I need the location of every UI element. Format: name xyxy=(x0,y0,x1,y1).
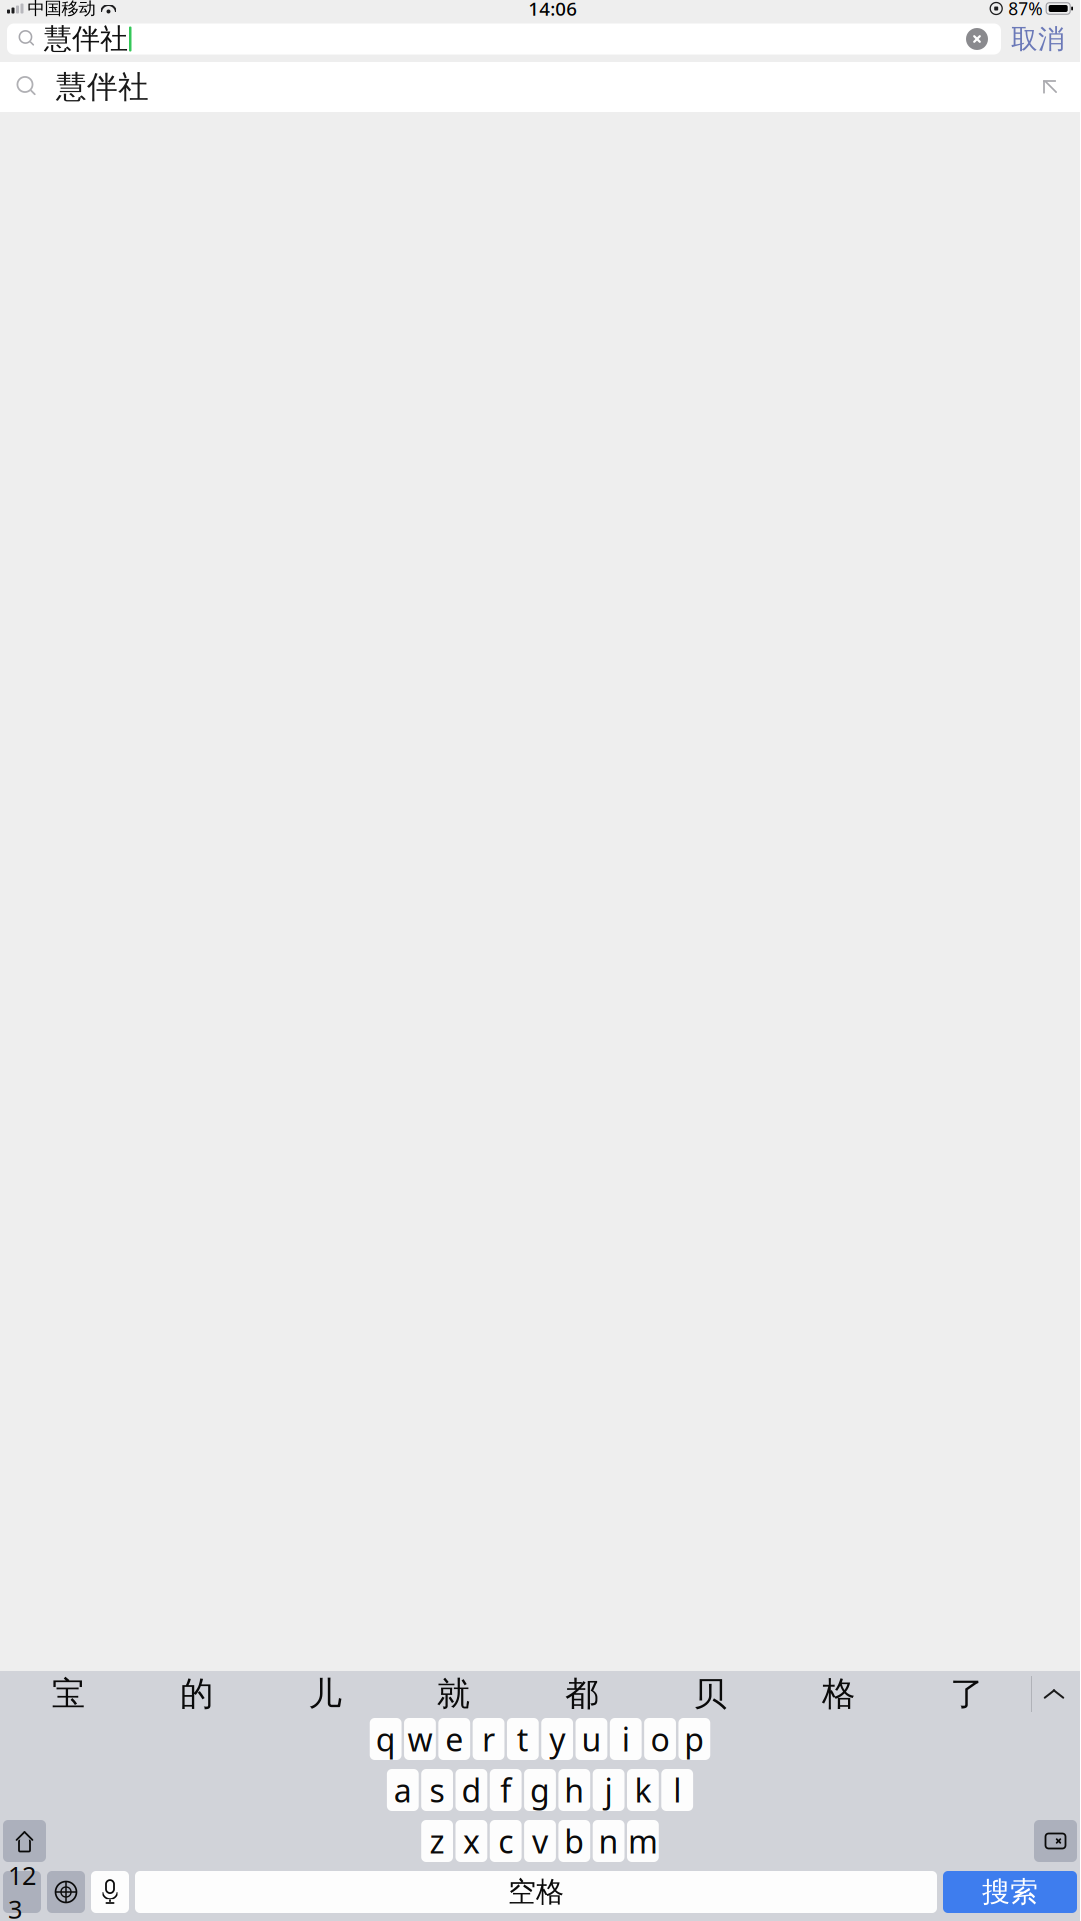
button[interactable]: k xyxy=(627,1769,659,1811)
button[interactable]: m xyxy=(627,1820,659,1862)
staticText: 就 xyxy=(437,1673,470,1714)
button[interactable]: p xyxy=(678,1718,710,1760)
button[interactable]: i xyxy=(610,1718,642,1760)
staticText: k xyxy=(634,1769,651,1811)
staticText: x xyxy=(463,1820,480,1862)
button[interactable]: 贝 xyxy=(646,1671,774,1717)
button[interactable]: f xyxy=(490,1769,522,1811)
button[interactable]: 取消 xyxy=(1001,22,1075,56)
button[interactable]: 慧伴社 xyxy=(0,62,1080,112)
button[interactable]: 的 xyxy=(132,1671,261,1717)
button[interactable]: 空格 xyxy=(135,1871,937,1913)
button[interactable]: o xyxy=(644,1718,676,1760)
staticText: 格 xyxy=(822,1673,855,1714)
button[interactable]: b xyxy=(558,1820,590,1862)
button[interactable]: 儿 xyxy=(261,1671,389,1717)
staticText: 14:06 xyxy=(528,0,577,21)
button[interactable]: r xyxy=(473,1718,504,1760)
staticText: n xyxy=(599,1820,619,1862)
button[interactable]: 宝 xyxy=(4,1671,132,1717)
button[interactable]: j xyxy=(593,1769,624,1811)
staticText: c xyxy=(498,1820,513,1862)
button[interactable]: h xyxy=(558,1769,590,1811)
button[interactable]: y xyxy=(541,1718,573,1760)
button[interactable]: d xyxy=(455,1769,487,1811)
staticText: 搜索 xyxy=(982,1875,1038,1909)
button[interactable]: v xyxy=(524,1820,556,1862)
button[interactable]: Shift xyxy=(3,1820,46,1862)
staticText: h xyxy=(564,1769,584,1811)
staticText: p xyxy=(684,1718,704,1760)
button[interactable]: w xyxy=(404,1718,436,1760)
staticText: 取消 xyxy=(1011,23,1065,55)
button[interactable]: l xyxy=(661,1769,693,1811)
button[interactable]: 了 xyxy=(903,1671,1031,1717)
staticText: j xyxy=(605,1769,613,1811)
staticText: 中国移动 xyxy=(27,0,95,19)
button[interactable]: 格 xyxy=(774,1671,903,1717)
button[interactable]: g xyxy=(524,1769,556,1811)
button[interactable]: Clear text xyxy=(957,19,997,59)
staticText: z xyxy=(430,1820,445,1862)
button[interactable]: 都 xyxy=(517,1671,646,1717)
button[interactable]: u xyxy=(576,1718,607,1760)
staticText: f xyxy=(500,1769,511,1811)
staticText: r xyxy=(482,1718,495,1760)
button[interactable]: a xyxy=(387,1769,419,1811)
button[interactable]: c xyxy=(490,1820,522,1862)
staticText: u xyxy=(581,1718,601,1760)
button[interactable]: 就 xyxy=(389,1671,517,1717)
staticText: s xyxy=(430,1769,445,1811)
staticText: 慧伴社 xyxy=(44,22,128,56)
button[interactable]: q xyxy=(370,1718,402,1760)
staticText: o xyxy=(651,1718,670,1760)
staticText: 贝 xyxy=(694,1673,727,1714)
button[interactable]: x xyxy=(455,1820,487,1862)
staticText: 宝 xyxy=(52,1673,85,1714)
staticText: q xyxy=(376,1718,396,1760)
staticText: 87% xyxy=(1008,0,1042,20)
staticText: 123 xyxy=(8,1858,36,1921)
staticText: a xyxy=(394,1769,412,1811)
staticText: 慧伴社 xyxy=(56,68,149,106)
staticText: 了 xyxy=(950,1673,983,1714)
staticText: v xyxy=(532,1820,548,1862)
button[interactable]: s xyxy=(421,1769,453,1811)
staticText: 空格 xyxy=(508,1875,564,1909)
staticText: t xyxy=(517,1718,529,1760)
staticText: y xyxy=(549,1718,565,1760)
button[interactable]: Dictation xyxy=(91,1871,129,1913)
staticText: 都 xyxy=(565,1673,598,1714)
button[interactable]: 123 xyxy=(3,1871,41,1913)
staticText: l xyxy=(673,1769,681,1811)
staticText: m xyxy=(628,1820,658,1862)
staticText: b xyxy=(564,1820,584,1862)
button[interactable]: 搜索 xyxy=(943,1871,1077,1913)
staticText: g xyxy=(530,1769,550,1811)
button[interactable]: t xyxy=(507,1718,539,1760)
staticText: d xyxy=(461,1769,481,1811)
staticText: 儿 xyxy=(308,1673,341,1714)
staticText: i xyxy=(622,1718,630,1760)
button[interactable]: n xyxy=(593,1820,624,1862)
staticText: 的 xyxy=(180,1673,213,1714)
button[interactable]: Next keyboard xyxy=(47,1871,85,1913)
button[interactable]: Delete xyxy=(1034,1820,1077,1862)
staticText: w xyxy=(407,1718,432,1760)
button[interactable]: e xyxy=(438,1718,470,1760)
staticText: e xyxy=(445,1718,463,1760)
button[interactable]: z xyxy=(421,1820,453,1862)
button[interactable]: More candidates xyxy=(1032,1671,1076,1717)
